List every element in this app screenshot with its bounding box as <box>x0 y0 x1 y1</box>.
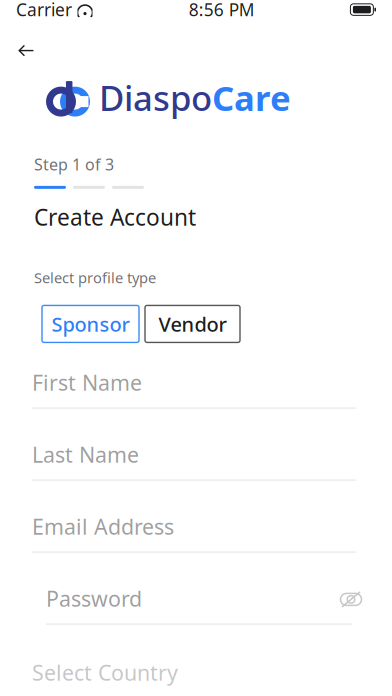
staticText: 8:56 PM <box>189 0 255 21</box>
button[interactable]: Password <box>46 586 352 622</box>
staticText: Create Account <box>34 202 196 232</box>
staticText: Vendor <box>158 311 226 337</box>
staticText: Email Address <box>32 512 174 540</box>
staticText: Select profile type <box>34 268 156 287</box>
staticText: Carrier <box>16 0 72 21</box>
button[interactable]: Vendor <box>145 305 240 342</box>
staticText: Care <box>212 75 291 121</box>
staticText: First Name <box>32 368 142 396</box>
button[interactable]: Back <box>4 34 48 68</box>
staticText: Sponsor <box>51 311 129 337</box>
staticText: Select Country <box>32 658 178 686</box>
button[interactable]: Select Country <box>32 660 356 696</box>
button[interactable]: Email Address <box>32 514 356 550</box>
staticText: Last Name <box>32 440 139 468</box>
staticText: Diaspo <box>99 75 212 121</box>
staticText: Password <box>46 584 142 612</box>
staticText: Step 1 of 3 <box>34 154 114 175</box>
button[interactable]: Show password <box>336 584 366 614</box>
button[interactable]: First Name <box>32 370 356 406</box>
button[interactable]: Last Name <box>32 442 356 478</box>
button[interactable]: Sponsor <box>42 305 139 342</box>
